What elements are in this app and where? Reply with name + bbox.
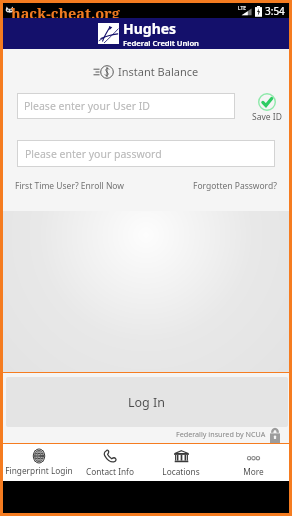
- staticText: Instant Balance: [118, 64, 199, 79]
- staticText: LTE: [238, 5, 247, 12]
- staticText: Please enter your password: [25, 147, 162, 161]
- staticText: Log In: [128, 394, 166, 411]
- button[interactable]: Forgotten Password?: [193, 180, 277, 192]
- other: More: [245, 448, 262, 465]
- button[interactable]: Please enter your User ID: [17, 93, 235, 119]
- button[interactable]: Please enter your password: [17, 140, 275, 167]
- button[interactable]: More: [217, 444, 289, 481]
- staticText: hack-cheat.org: [11, 3, 120, 18]
- other: Contact Info: [101, 448, 118, 465]
- button[interactable]: Save ID: [249, 93, 284, 123]
- staticText: Forgotten Password?: [193, 180, 277, 192]
- staticText: Please enter your User ID: [24, 99, 150, 113]
- staticText: Federal Credit Union: [123, 38, 199, 48]
- button[interactable]: Locations: [145, 444, 217, 481]
- staticText: Contact Info: [86, 466, 134, 477]
- other: Locations: [173, 448, 190, 465]
- button[interactable]: Instant Balance: [89, 61, 203, 82]
- button[interactable]: Log In: [6, 377, 288, 427]
- staticText: 3:54: [265, 4, 285, 18]
- staticText: Locations: [162, 466, 200, 477]
- button[interactable]: First Time User? Enroll Now: [15, 180, 124, 192]
- staticText: More: [243, 466, 264, 477]
- button[interactable]: Fingerprint Login: [3, 444, 74, 481]
- staticText: First Time User? Enroll Now: [15, 180, 124, 192]
- other: Fingerprint Login: [31, 448, 47, 464]
- button[interactable]: Contact Info: [74, 444, 145, 481]
- staticText: Federally insured by NCUA: [176, 429, 266, 439]
- staticText: Hughes: [123, 19, 177, 38]
- staticText: Save ID: [252, 111, 282, 123]
- staticText: Fingerprint Login: [5, 465, 73, 476]
